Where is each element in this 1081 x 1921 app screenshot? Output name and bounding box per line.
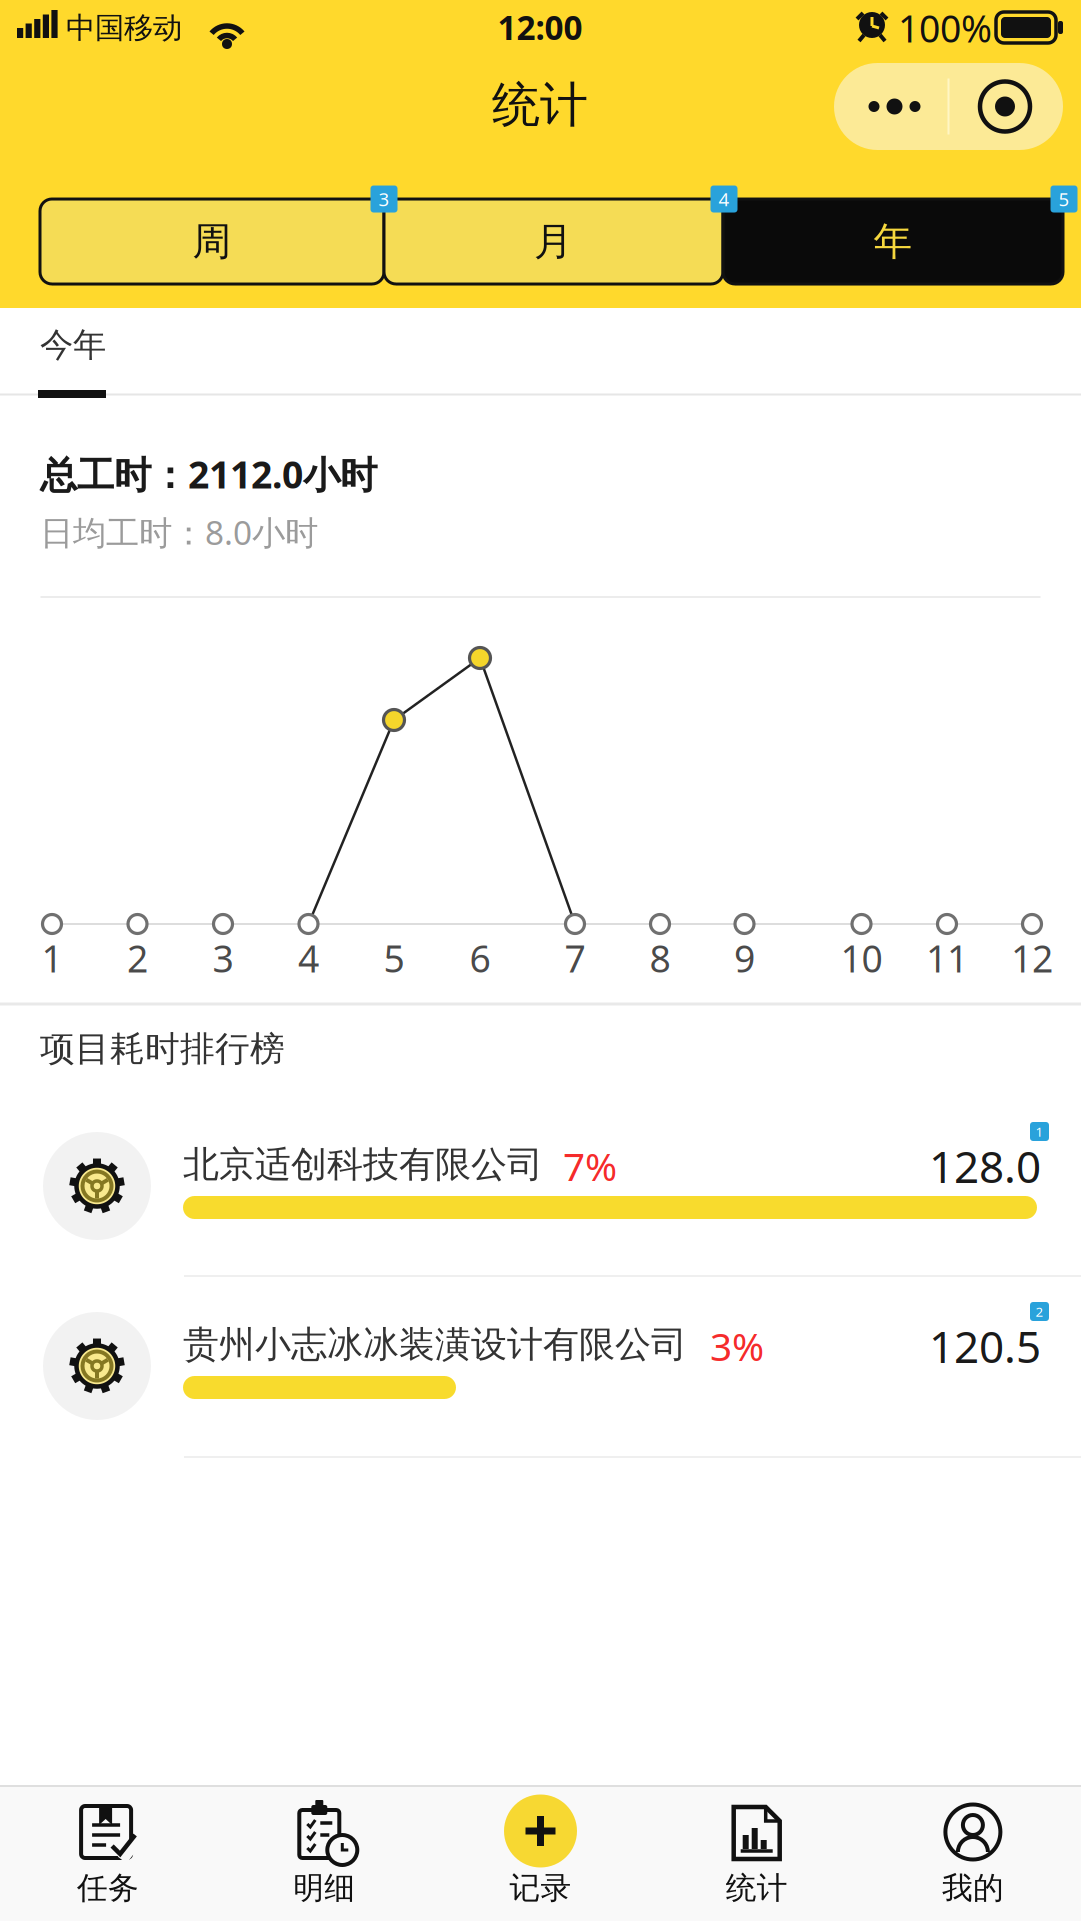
staticText: 北京适创科技有限公司 [183,1142,543,1187]
staticText: 120.5 [929,1317,1041,1375]
staticText: 年 [873,218,912,265]
button[interactable]: 周 [40,199,384,284]
button[interactable]: 年 [723,199,1063,284]
staticText: 6 [469,933,490,983]
staticText: 4 [298,933,319,983]
staticText: 周 [192,218,231,265]
staticText: 1 [1035,1123,1043,1140]
staticText: 100% [898,3,992,53]
button[interactable]: 更多 [834,63,948,150]
staticText: 3 [212,933,233,983]
staticText: 贵州小志冰冰装潢设计有限公司 [183,1322,687,1367]
button[interactable]: 统计 [649,1785,865,1921]
button[interactable]: 北京适创科技有限公司 [0,1096,1081,1276]
staticText: 4 [718,187,729,211]
staticText: 12 [1011,933,1053,983]
staticText: 128.0 [929,1137,1041,1195]
button[interactable]: 任务 [0,1785,216,1921]
staticText: 7% [563,1140,617,1192]
staticText: 5 [383,933,404,983]
staticText: 8 [649,933,670,983]
staticText: 5 [1058,187,1069,211]
staticText: 记录 [509,1869,571,1907]
button[interactable]: 我的 [865,1785,1081,1921]
staticText: 总工时：2112.0小时 [40,449,377,499]
button[interactable]: 关闭 [948,63,1063,150]
staticText: 我的 [942,1869,1004,1907]
staticText: 统计 [492,75,588,134]
staticText: 1 [41,933,62,983]
button[interactable]: 记录 [432,1785,648,1921]
staticText: 9 [734,933,755,983]
button[interactable]: 月 [384,199,723,284]
staticText: 明细 [293,1869,355,1907]
staticText: 统计 [726,1869,788,1907]
staticText: 今年 [40,324,106,365]
button[interactable]: 贵州小志冰冰装潢设计有限公司 [0,1276,1081,1456]
staticText: 任务 [77,1869,139,1907]
staticText: 中国移动 [66,10,182,46]
staticText: 日均工时：8.0小时 [40,510,318,554]
staticText: 11 [926,933,968,983]
staticText: 3% [710,1320,764,1372]
staticText: 2 [1035,1303,1043,1320]
staticText: 10 [840,933,882,983]
staticText: 月 [534,218,573,265]
button[interactable]: 今年 [0,308,1081,396]
staticText: 12:00 [497,5,582,49]
staticText: 7 [564,933,585,983]
staticText: 2 [127,933,148,983]
staticText: 项目耗时排行榜 [40,1028,285,1070]
button[interactable]: 明细 [216,1785,432,1921]
staticText: 3 [378,187,389,211]
